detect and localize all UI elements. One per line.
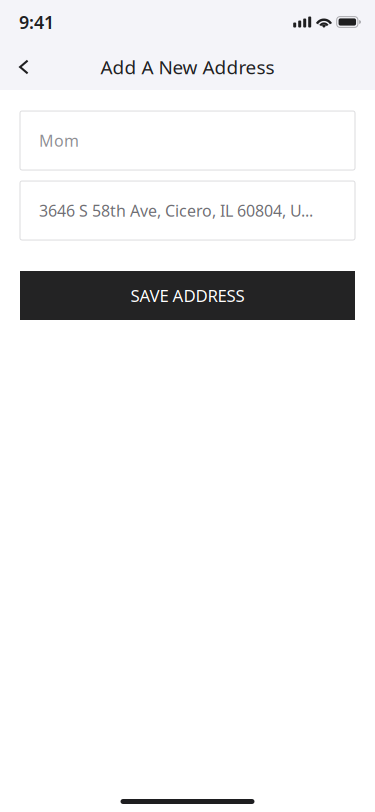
button[interactable]: SAVE ADDRESS	[20, 271, 355, 320]
button[interactable]: Back	[0, 47, 43, 86]
staticText: 3646 S 58th Ave, Cicero, IL 60804, U...	[39, 200, 313, 221]
staticText: Mom	[39, 130, 79, 151]
staticText: SAVE ADDRESS	[130, 284, 244, 307]
staticText: Add A New Address	[100, 54, 274, 80]
button[interactable]: Mom	[20, 111, 355, 170]
button[interactable]: 3646 S 58th Ave, Cicero, IL 60804, U...	[20, 181, 355, 240]
staticText: 9:41	[19, 10, 54, 34]
